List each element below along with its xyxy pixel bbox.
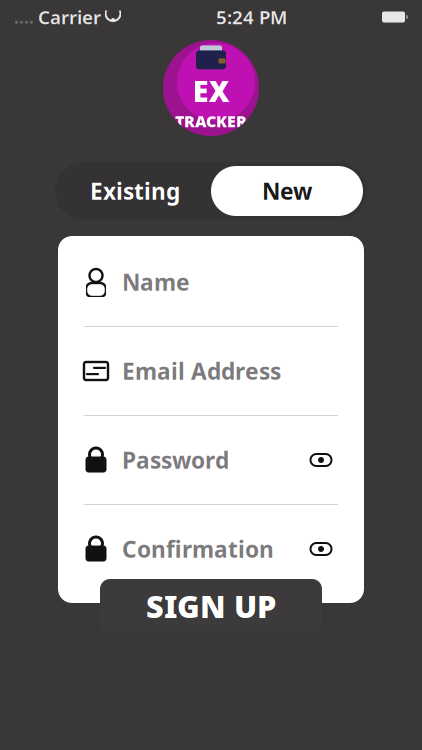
staticText: Carrier bbox=[38, 5, 101, 29]
button[interactable]: Show Confirmation bbox=[304, 532, 338, 566]
staticText: Email Address bbox=[122, 356, 281, 386]
button[interactable]: SIGN UP bbox=[100, 579, 322, 633]
staticText: Password bbox=[122, 445, 229, 475]
button[interactable]: New bbox=[211, 166, 363, 216]
staticText: Confirmation bbox=[122, 534, 274, 564]
staticText: .... bbox=[14, 5, 34, 28]
staticText: EX bbox=[192, 71, 229, 110]
button[interactable]: Show Password bbox=[304, 443, 338, 477]
staticText: Existing bbox=[90, 176, 180, 206]
staticText: Name bbox=[122, 267, 190, 297]
staticText: TRACKER bbox=[175, 110, 247, 132]
button[interactable]: Existing bbox=[59, 166, 211, 216]
staticText: SIGN UP bbox=[146, 586, 276, 626]
staticText: 5:24 PM bbox=[216, 5, 287, 29]
staticText: New bbox=[262, 176, 312, 206]
